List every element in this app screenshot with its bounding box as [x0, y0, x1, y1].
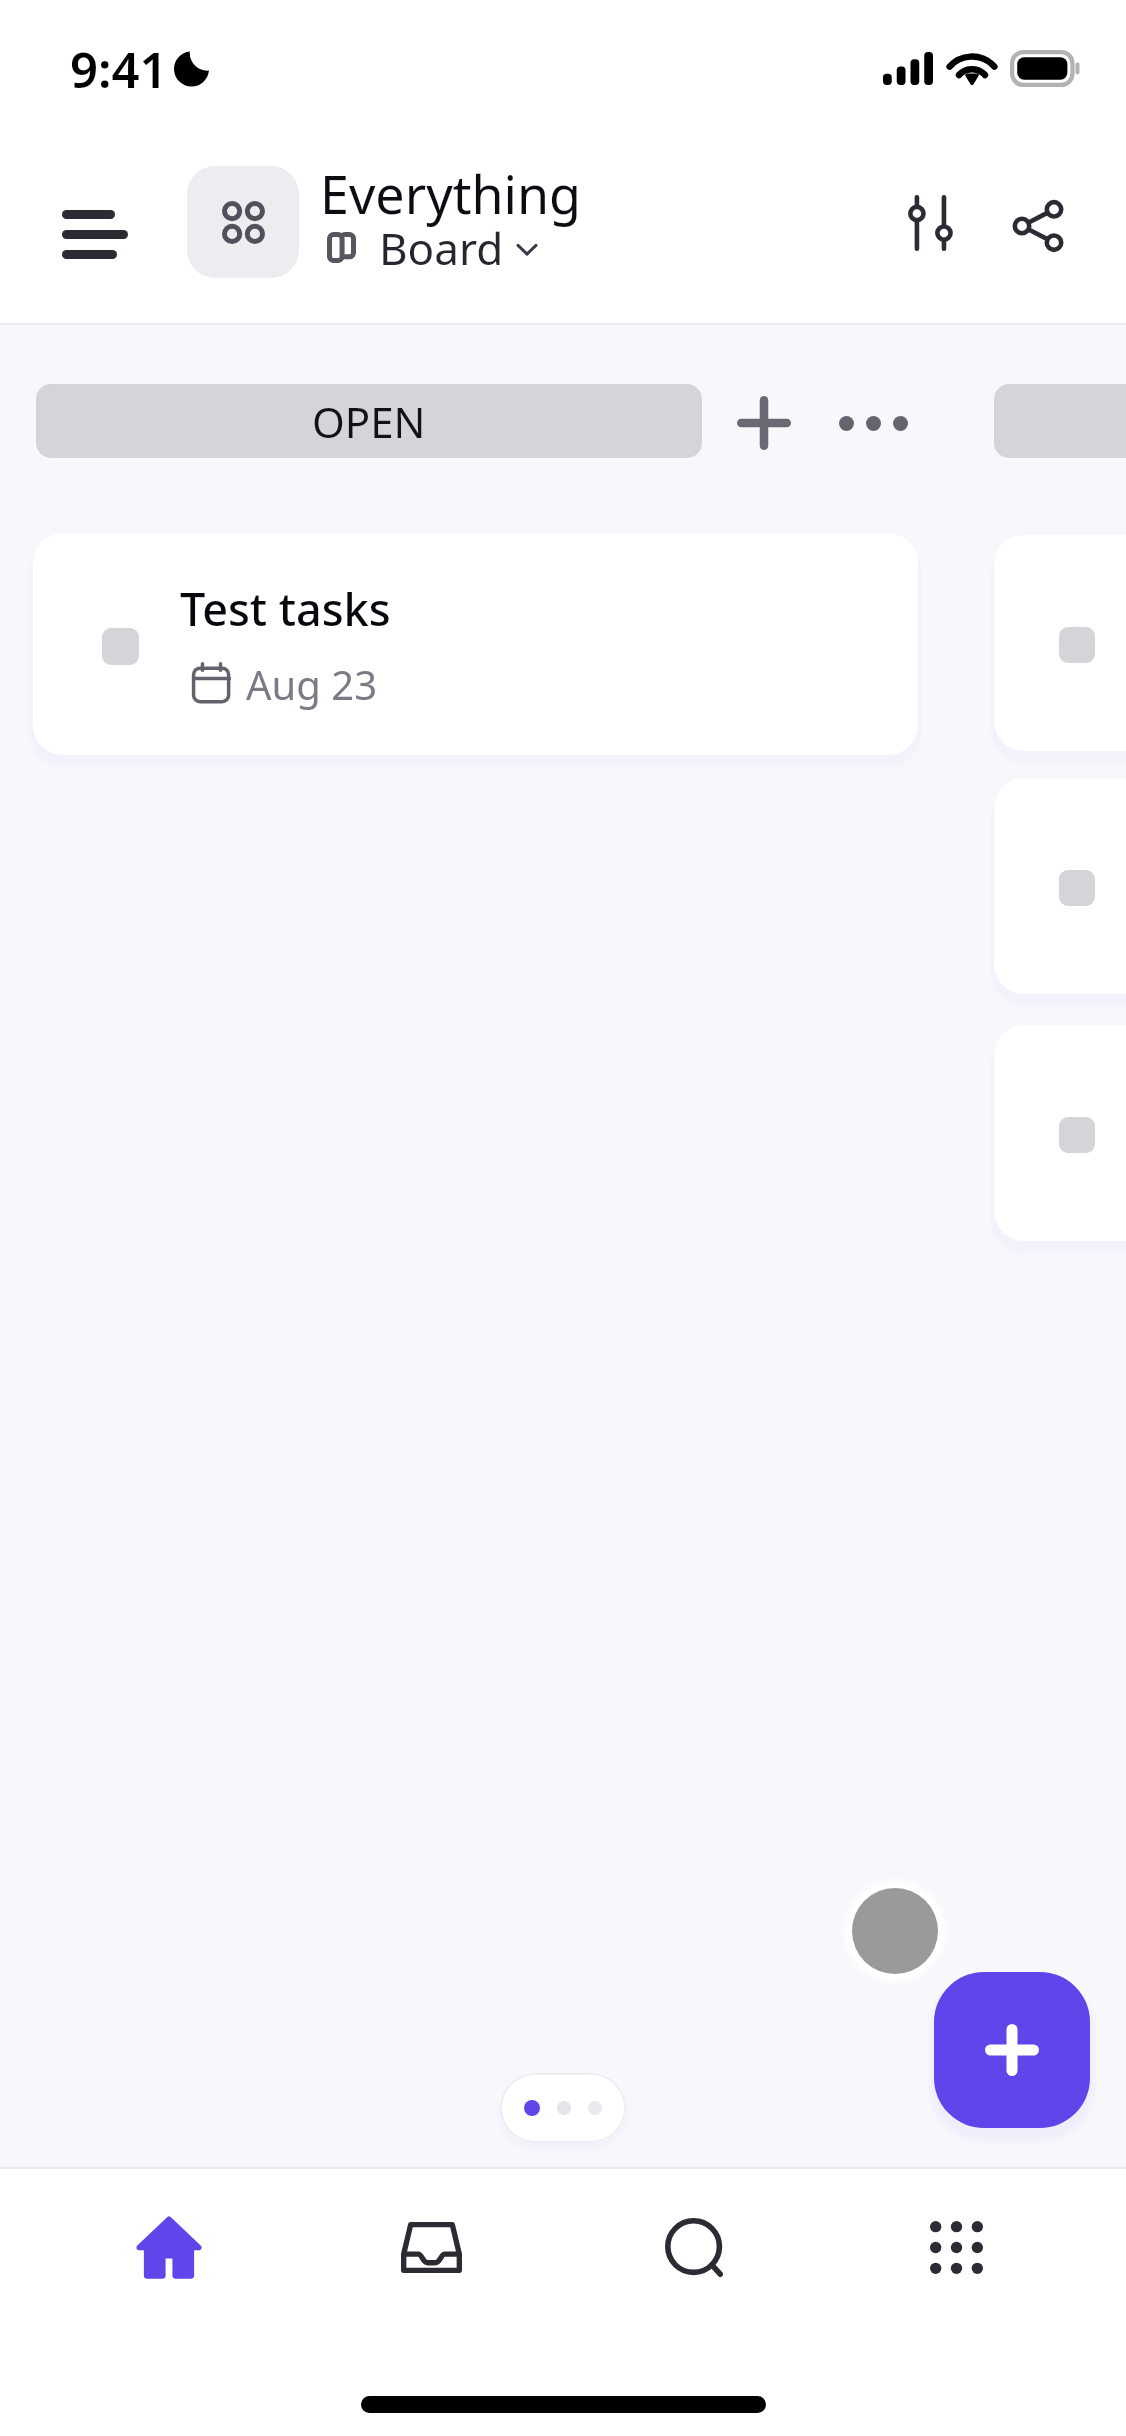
button[interactable]: [994, 1025, 1126, 1241]
button[interactable]: [994, 778, 1126, 994]
button[interactable]: Home: [38, 2169, 300, 2325]
button[interactable]: Add task: [727, 386, 801, 460]
button[interactable]: Share: [988, 176, 1088, 276]
staticText: Aug 23: [246, 657, 378, 711]
staticText: Everything: [320, 158, 582, 229]
staticText: 9:41: [70, 36, 168, 103]
button[interactable]: [500, 2073, 626, 2143]
staticText: Board: [379, 218, 504, 278]
button[interactable]: Profile: [852, 1888, 938, 1974]
button[interactable]: Create: [934, 1972, 1090, 2128]
button[interactable]: [994, 384, 1126, 458]
button[interactable]: Filter: [882, 173, 982, 273]
button[interactable]: Apps: [825, 2169, 1088, 2325]
button[interactable]: Inbox: [300, 2169, 562, 2325]
button[interactable]: Test tasks: [33, 533, 918, 755]
button[interactable]: Search: [562, 2169, 825, 2325]
button[interactable]: Space: [187, 166, 299, 278]
staticText: OPEN: [312, 393, 426, 450]
button[interactable]: OPEN: [36, 384, 702, 458]
button[interactable]: Everything: [315, 150, 585, 290]
staticText: Test tasks: [180, 578, 391, 639]
button[interactable]: [994, 535, 1126, 751]
button[interactable]: More options: [823, 386, 923, 460]
button[interactable]: Menu: [33, 168, 159, 294]
